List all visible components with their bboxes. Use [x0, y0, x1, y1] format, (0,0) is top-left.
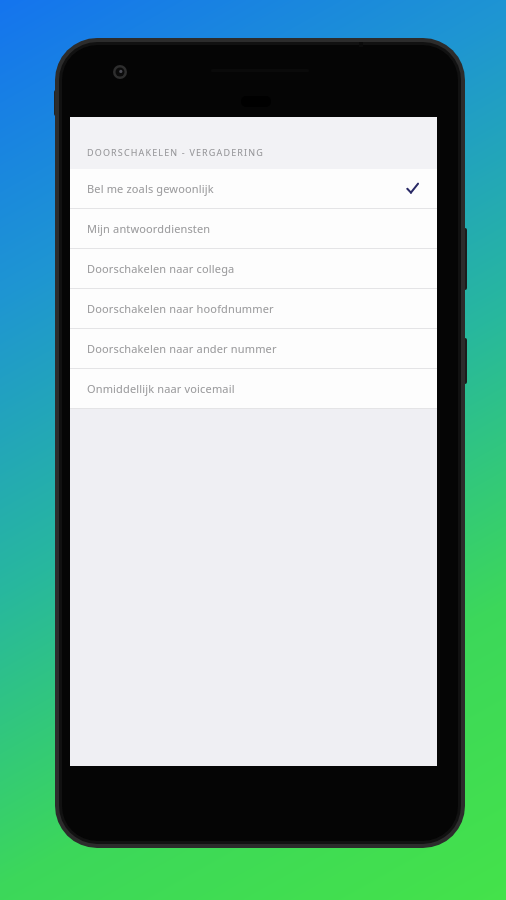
button[interactable]: Onmiddellijk naar voicemail [70, 369, 437, 408]
staticText: Bel me zoals gewoonlijk [87, 181, 406, 196]
button[interactable]: Doorschakelen naar hoofdnummer [70, 289, 437, 328]
button[interactable]: Doorschakelen naar collega [70, 249, 437, 288]
staticText: Doorschakelen naar ander nummer [87, 341, 419, 356]
staticText: Onmiddellijk naar voicemail [87, 381, 419, 396]
button[interactable]: Bel me zoals gewoonlijk [70, 169, 437, 208]
other: Geselecteerd [406, 182, 419, 195]
staticText: Doorschakelen naar collega [87, 261, 419, 276]
button[interactable]: Mijn antwoorddiensten [70, 209, 437, 248]
staticText: Doorschakelen naar hoofdnummer [87, 301, 419, 316]
button[interactable]: Doorschakelen naar ander nummer [70, 329, 437, 368]
staticText: DOORSCHAKELEN - VERGADERING [87, 146, 264, 158]
staticText: Mijn antwoorddiensten [87, 221, 419, 236]
